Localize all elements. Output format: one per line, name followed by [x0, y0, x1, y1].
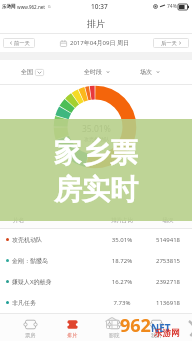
staticText: 全国 — [21, 68, 33, 76]
button[interactable]: 嫌疑人X的献身 — [0, 271, 192, 292]
button[interactable]: 排片 — [51, 316, 93, 339]
button[interactable]: 非凡任务 — [0, 292, 192, 313]
button[interactable]: 我的 — [135, 316, 177, 339]
staticText: 房实时 — [54, 172, 138, 207]
staticText: 16.27% — [98, 278, 146, 286]
staticText: 2392718 — [146, 278, 190, 286]
staticText: 全时段 — [84, 68, 102, 76]
staticText: 乐游网 — [154, 328, 180, 339]
staticText: NET — [151, 321, 171, 335]
button[interactable]: 攻壳机动队 — [0, 229, 192, 250]
staticText: 我的 — [151, 332, 162, 339]
staticText: 场次 — [146, 217, 190, 224]
staticText: 嫌疑人X的献身 — [12, 278, 98, 286]
staticText: 攻壳机动队 — [12, 236, 98, 244]
button[interactable]: 全国 — [21, 60, 44, 84]
staticText: 片名 — [13, 217, 98, 224]
staticText: 74% — [167, 3, 177, 10]
staticText: 前一天 — [14, 40, 30, 47]
staticText: 攻壳机动队 — [84, 136, 109, 142]
button[interactable]: 2017年04月09日 周日 — [60, 34, 130, 52]
staticText: G — [48, 4, 51, 9]
staticText: 2753815 — [146, 257, 190, 265]
staticText: www.962.net — [17, 4, 46, 10]
staticText: 后一天 — [161, 40, 177, 47]
button[interactable]: 前一天 — [3, 38, 35, 48]
staticText: 排片 — [67, 332, 78, 339]
staticText: 场次 — [140, 68, 152, 76]
button[interactable]: 全时段 — [84, 60, 111, 84]
staticText: 18.72% — [98, 257, 146, 265]
button[interactable]: 金刚：骷髅岛 — [0, 250, 192, 271]
staticText: 1136918 — [146, 299, 190, 307]
button[interactable]: 影院 — [93, 316, 135, 339]
staticText: 非凡任务 — [12, 299, 98, 307]
staticText: 金刚：骷髅岛 — [12, 257, 98, 265]
staticText: 35.01% — [82, 123, 111, 135]
staticText: 乐游网 — [2, 4, 16, 10]
button[interactable]: 票房 — [9, 316, 51, 339]
staticText: 排片 — [87, 18, 105, 29]
staticText: 5149418 — [146, 236, 190, 244]
staticText: 35.01% — [98, 236, 146, 244]
staticText: 10:37 — [91, 2, 108, 11]
button[interactable]: 场次 — [140, 60, 161, 84]
button[interactable]: 后一天 — [153, 38, 189, 48]
staticText: 7.73% — [98, 299, 146, 307]
staticText: 影院 — [109, 332, 120, 339]
staticText: 家乡票 — [54, 135, 138, 170]
staticText: 排片占比 — [98, 217, 146, 224]
staticText: 2017年04月09日 周日 — [70, 39, 130, 47]
staticText: 票房 — [25, 332, 36, 339]
staticText: 962 — [120, 313, 151, 338]
